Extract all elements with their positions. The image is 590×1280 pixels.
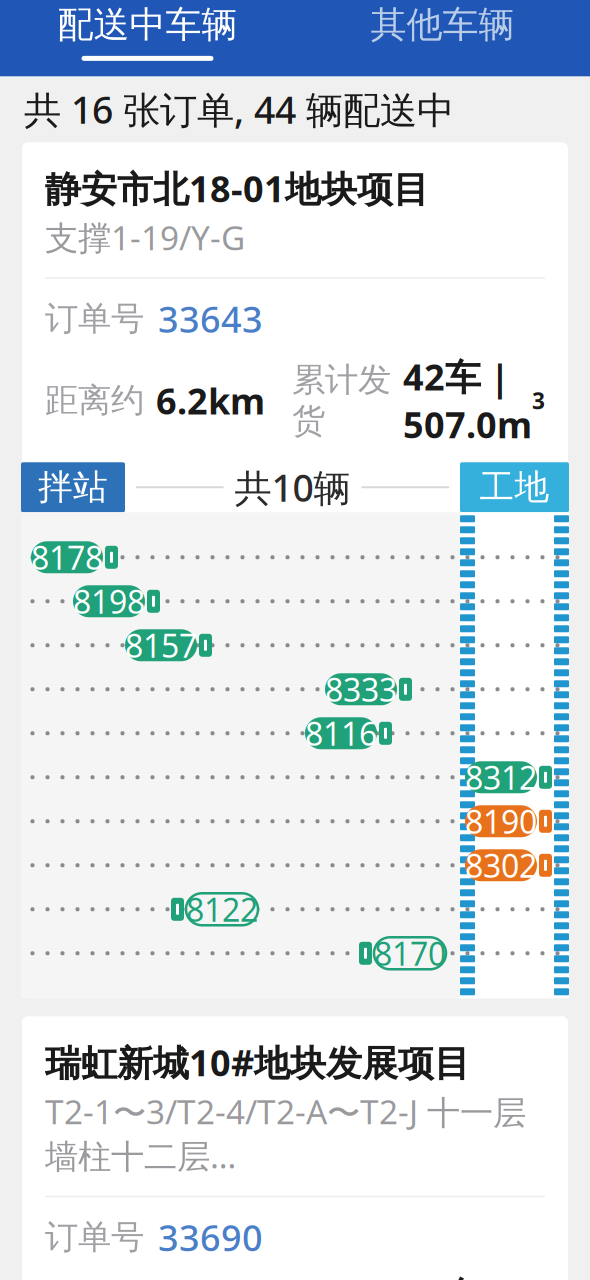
staticText: 配送中车辆 <box>57 3 237 47</box>
staticText: 8116 <box>305 712 377 754</box>
staticText: 42车 | 507.0m <box>403 353 532 448</box>
staticText: 8302 <box>465 844 537 886</box>
staticText: 订单号 <box>45 1217 144 1258</box>
staticText: 共10辆 <box>234 462 350 512</box>
staticText: 3 <box>532 385 545 415</box>
button[interactable]: 其他车辆 <box>295 0 590 73</box>
staticText: 8122 <box>186 888 258 930</box>
staticText: 8190 <box>465 800 537 842</box>
staticText: 其他车辆 <box>370 3 514 47</box>
staticText: 距离约 <box>45 380 144 421</box>
staticText: 拌站 <box>38 466 108 509</box>
button[interactable]: 配送中车辆 <box>0 0 295 73</box>
staticText: 静安市北18-01地块项目 <box>45 164 429 212</box>
staticText: 33690 <box>158 1213 263 1261</box>
staticText: 8157 <box>125 624 197 666</box>
staticText: 工地 <box>479 466 549 509</box>
staticText: 8312 <box>465 756 537 798</box>
staticText: 8178 <box>31 536 103 578</box>
button[interactable]: 工地 <box>460 462 569 512</box>
staticText: 6.2km <box>156 377 265 424</box>
staticText: 累计发货 <box>292 359 391 441</box>
staticText: 共 16 张订单, 44 辆配送中 <box>24 84 454 134</box>
staticText: 33643 <box>158 295 263 343</box>
staticText: 8198 <box>73 580 145 622</box>
button[interactable]: 拌站 <box>21 462 125 512</box>
staticText: 瑞虹新城10#地块发展项目 <box>45 1038 470 1086</box>
staticText: 10车 | 120.0m <box>403 1271 532 1280</box>
staticText: 支撑1-19/Y-G <box>45 215 245 259</box>
staticText: T2-1〜3/T2-4/T2-A〜T2-J 十一层墙柱十二层… <box>45 1089 526 1178</box>
staticText: 8170 <box>374 932 446 974</box>
staticText: 8333 <box>325 668 397 710</box>
staticText: 订单号 <box>45 298 144 339</box>
